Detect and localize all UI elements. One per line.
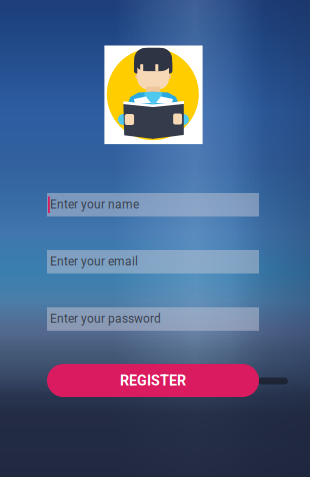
button[interactable]: Enter your email [47, 250, 259, 273]
button[interactable]: REGISTER [47, 364, 259, 397]
staticText: Enter your name [50, 197, 139, 211]
button[interactable]: Enter your password [47, 307, 259, 331]
staticText: Enter your password [50, 312, 161, 326]
staticText: Enter your email [50, 254, 138, 268]
staticText: REGISTER [120, 372, 186, 389]
button[interactable]: Enter your name [47, 193, 259, 216]
